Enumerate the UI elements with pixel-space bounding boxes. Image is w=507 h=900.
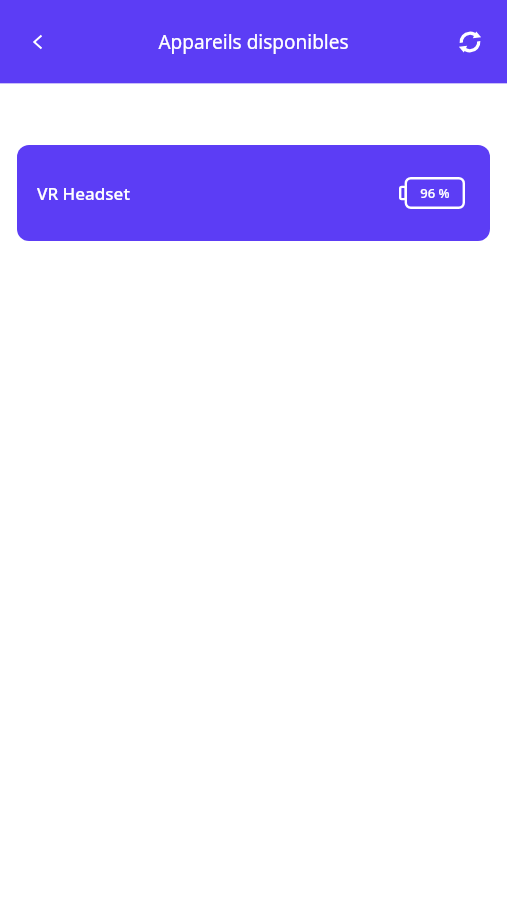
staticText: 96 % [420,184,450,202]
button[interactable]: Refresh [448,20,492,64]
button[interactable]: Back [16,20,60,64]
staticText: Appareils disponibles [158,29,349,55]
button[interactable]: VR Headset [17,145,490,241]
staticText: VR Headset [37,182,130,205]
